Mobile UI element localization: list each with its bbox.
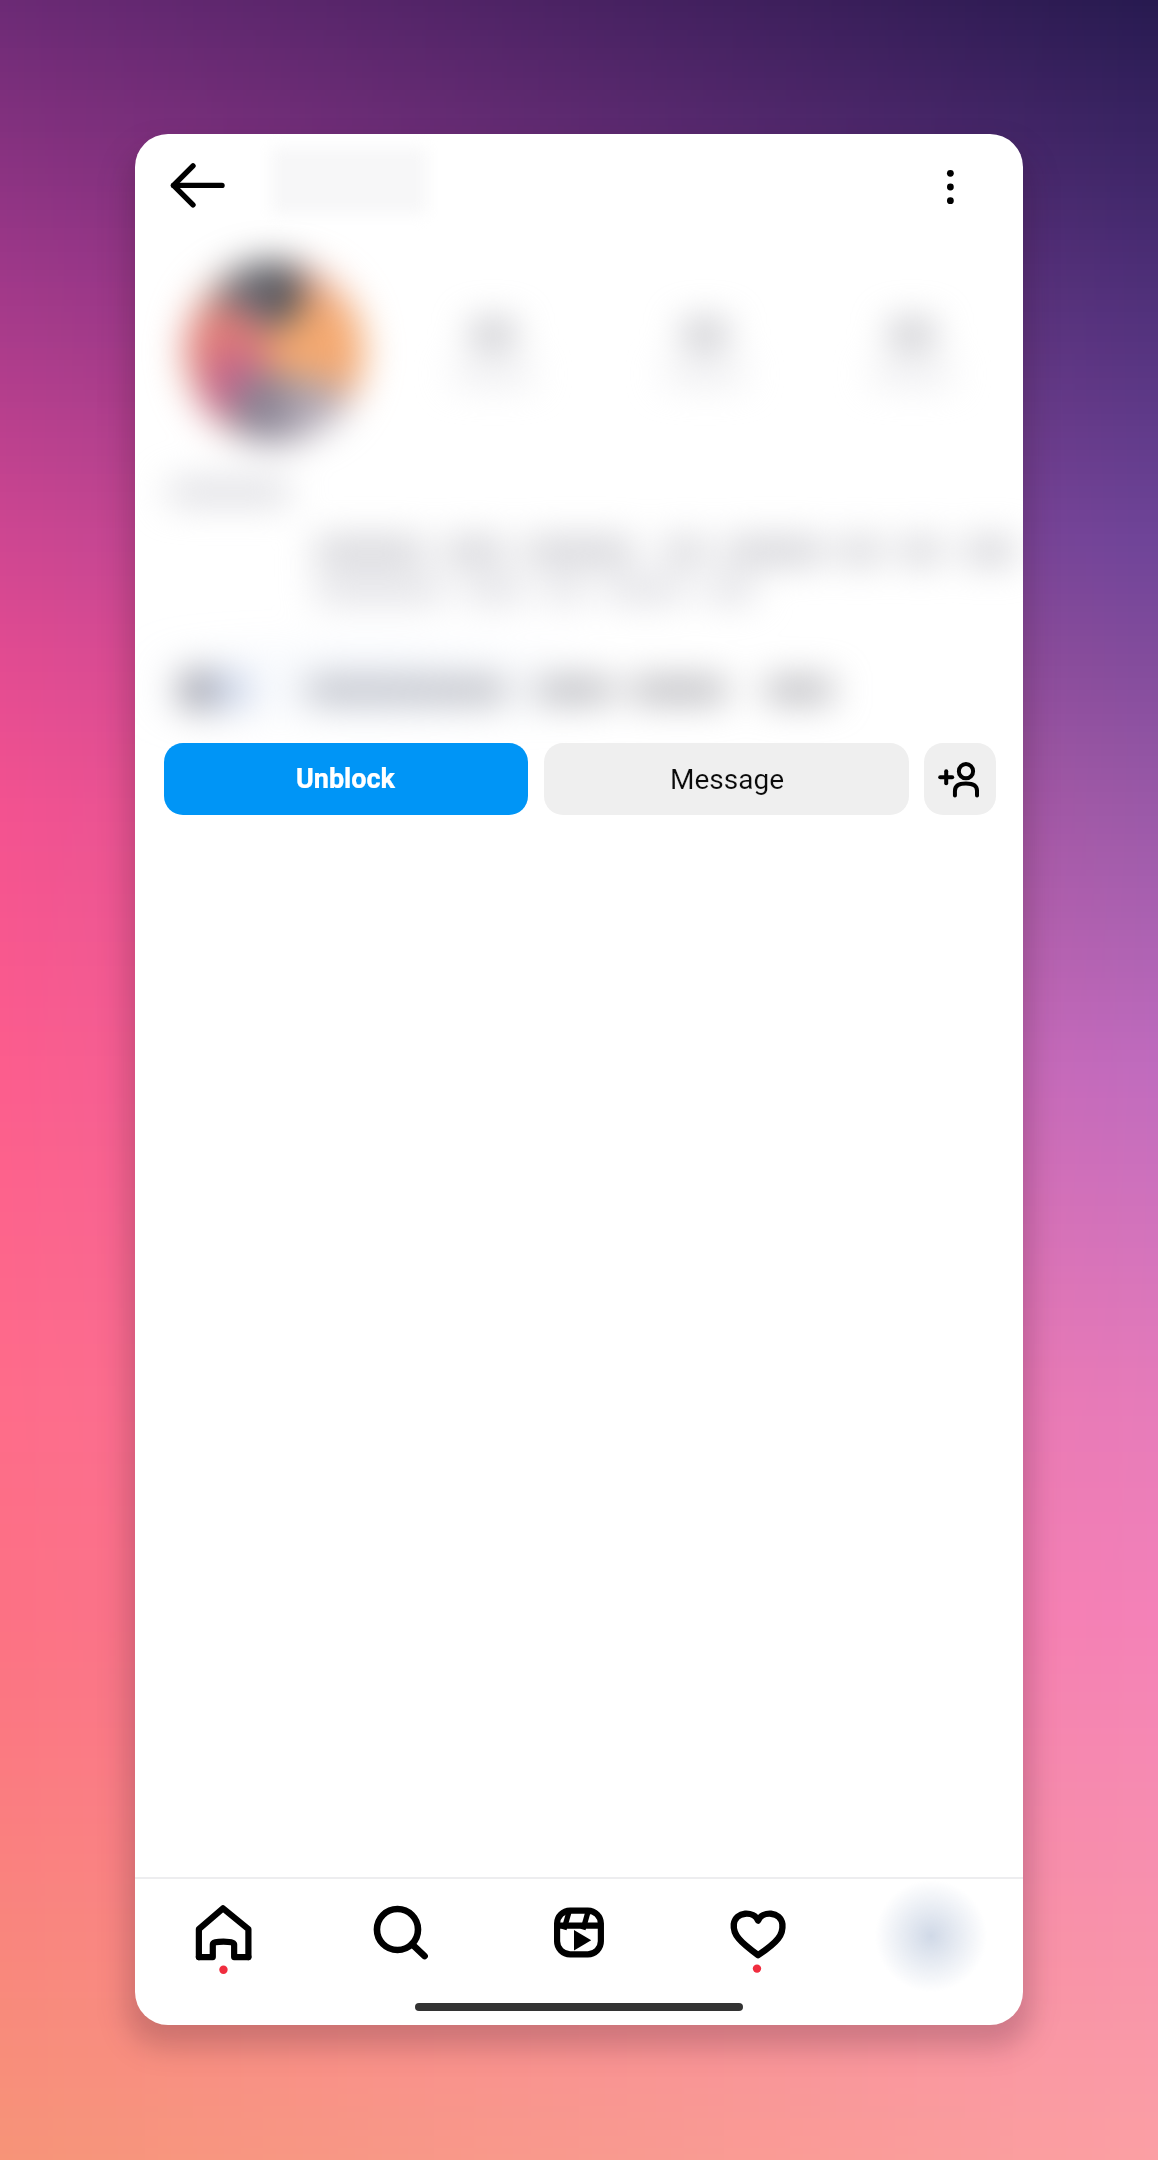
staticText: Message bbox=[670, 763, 784, 796]
button[interactable]: Home bbox=[165, 1883, 281, 1983]
button[interactable]: Back bbox=[155, 150, 235, 230]
button[interactable]: More options bbox=[920, 156, 982, 218]
button[interactable]: Unblock bbox=[164, 743, 528, 815]
button[interactable]: Add person bbox=[924, 743, 996, 815]
button[interactable]: Message bbox=[544, 743, 909, 815]
button[interactable]: Profile bbox=[881, 1886, 981, 1986]
staticText: Unblock bbox=[296, 763, 396, 795]
button[interactable]: Search bbox=[344, 1883, 460, 1983]
button[interactable]: Activity bbox=[702, 1883, 818, 1983]
button[interactable]: Reels bbox=[523, 1883, 639, 1983]
